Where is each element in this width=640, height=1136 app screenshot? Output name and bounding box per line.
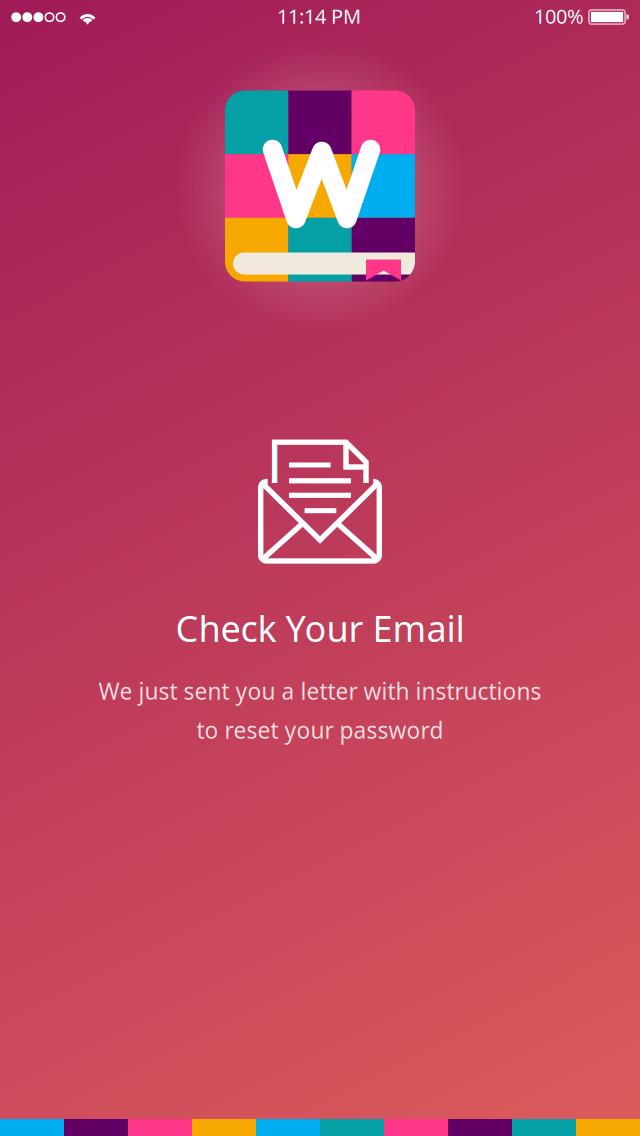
staticText: 11:14 PM [277,3,361,29]
staticText: Check Your Email [175,604,464,652]
staticText: 100% [534,3,584,29]
staticText: to reset your password [196,715,443,745]
staticText: We just sent you a letter with instructi… [98,676,541,706]
